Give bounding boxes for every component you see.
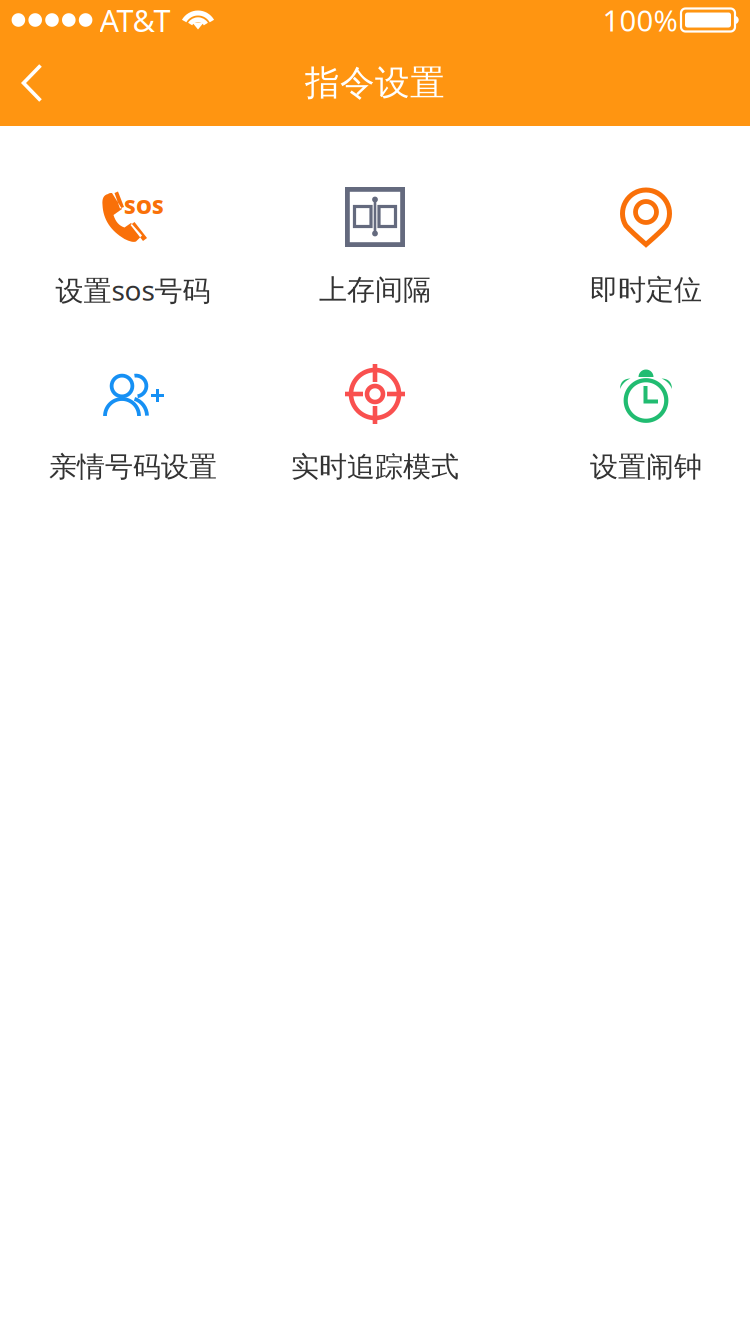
button[interactable]: Back	[0, 53, 64, 113]
staticText: 设置闹钟	[590, 450, 702, 484]
button[interactable]: 亲情号码设置	[20, 339, 246, 491]
button[interactable]: 上存间隔	[262, 162, 488, 314]
staticText: 即时定位	[590, 273, 702, 307]
staticText: 亲情号码设置	[49, 450, 217, 484]
staticText: 上存间隔	[319, 273, 431, 307]
button[interactable]: 即时定位	[533, 162, 750, 314]
staticText: AT&T	[99, 0, 170, 40]
staticText: 100%	[602, 0, 677, 39]
staticText: 实时追踪模式	[291, 450, 459, 484]
staticText: SOS	[124, 193, 164, 220]
staticText: 指令设置	[305, 62, 445, 104]
button[interactable]: 实时追踪模式	[262, 339, 488, 491]
staticText: 设置sos号码	[55, 271, 210, 309]
button[interactable]: SOS	[20, 162, 246, 314]
button[interactable]: 设置闹钟	[533, 339, 750, 491]
